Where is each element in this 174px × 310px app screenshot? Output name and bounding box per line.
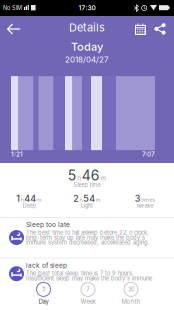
staticText: Light bbox=[81, 202, 93, 209]
staticText: Awake bbox=[136, 202, 153, 209]
staticText: long-term stay up late may make the body… bbox=[26, 234, 145, 241]
staticText: 30 bbox=[128, 286, 134, 293]
button[interactable]: 30 bbox=[110, 282, 152, 305]
button[interactable]: 7 bbox=[66, 282, 110, 305]
button[interactable]: Calendar bbox=[131, 16, 151, 42]
staticText: 2 bbox=[73, 193, 79, 204]
staticText: m bbox=[100, 174, 106, 182]
staticText: 3 bbox=[135, 193, 141, 204]
staticText: lack of sleep bbox=[26, 261, 67, 269]
staticText: h bbox=[77, 174, 81, 182]
staticText: m bbox=[37, 197, 42, 203]
staticText: Sleep too late bbox=[26, 221, 70, 229]
staticText: Insufficient sleep may make the body's i… bbox=[26, 275, 152, 282]
staticText: 44 bbox=[24, 193, 36, 204]
staticText: m bbox=[96, 197, 101, 203]
staticText: 7:07 bbox=[142, 150, 155, 158]
staticText: immune system decreased, accelerated agi… bbox=[26, 239, 150, 246]
staticText: 1:21 bbox=[11, 150, 23, 158]
staticText: No SIM bbox=[3, 5, 22, 11]
staticText: 5 bbox=[68, 167, 77, 184]
staticText: Sleep time bbox=[73, 182, 100, 188]
staticText: 46 bbox=[82, 167, 100, 184]
staticText: 17:30 bbox=[78, 4, 95, 12]
staticText: times bbox=[141, 197, 155, 203]
staticText: The best total sleep time is 7 to 9 hour… bbox=[26, 270, 134, 277]
staticText: h bbox=[80, 197, 83, 203]
staticText: Month bbox=[121, 298, 140, 305]
staticText: 1 bbox=[16, 193, 20, 204]
staticText: h bbox=[21, 197, 24, 203]
staticText: Week bbox=[80, 298, 95, 305]
staticText: Day bbox=[38, 298, 48, 305]
staticText: Deep bbox=[22, 202, 35, 209]
button[interactable]: Share bbox=[151, 16, 174, 42]
staticText: 2018/04/27 bbox=[65, 55, 109, 64]
staticText: 54 bbox=[83, 193, 95, 204]
button[interactable]: 1 bbox=[21, 282, 66, 305]
staticText: 7 bbox=[86, 286, 89, 293]
button[interactable]: Back bbox=[0, 16, 31, 42]
staticText: 1 bbox=[42, 286, 44, 293]
staticText: The best time to fall asleep before 22 o… bbox=[26, 229, 149, 236]
staticText: Details bbox=[69, 21, 105, 34]
staticText: Today bbox=[71, 40, 103, 53]
